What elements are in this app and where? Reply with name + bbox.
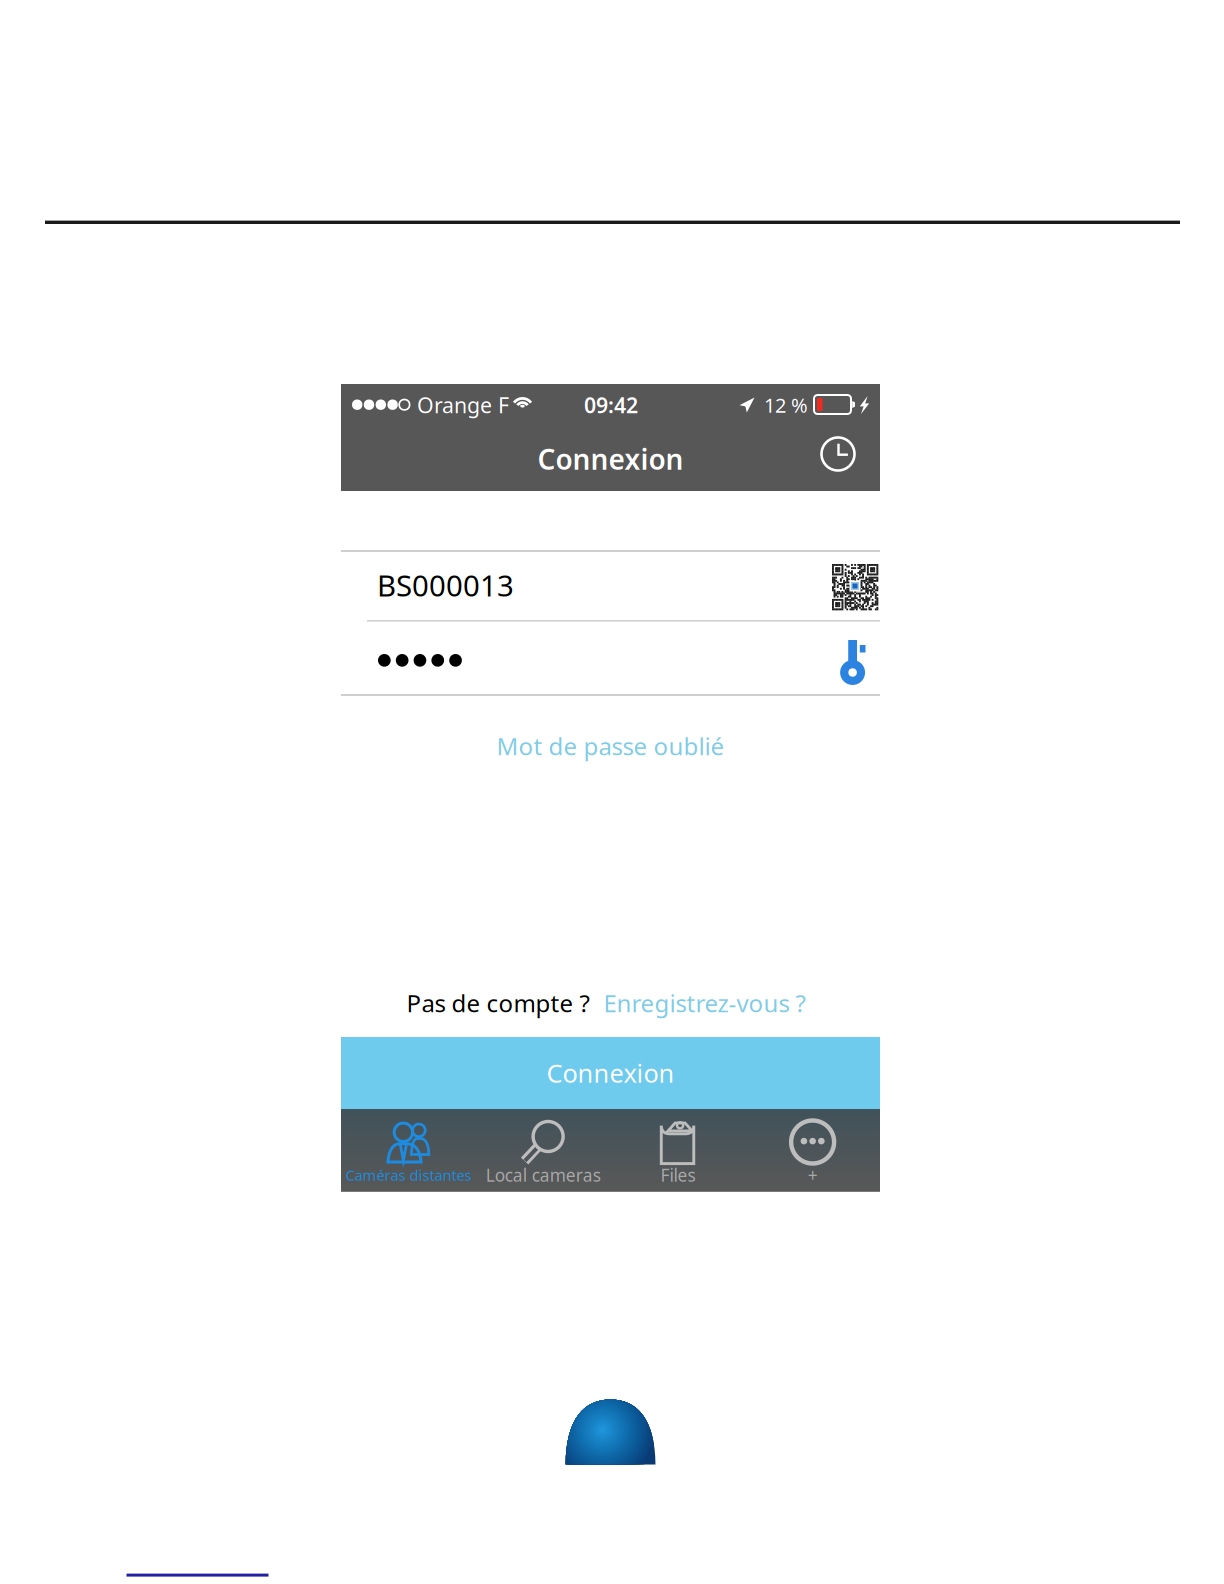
- staticText: Caméras distantes: [345, 1165, 471, 1185]
- button[interactable]: BS000013: [341, 550, 880, 620]
- button[interactable]: History: [810, 426, 866, 482]
- staticText: BS000013: [377, 565, 514, 604]
- staticText: Connexion: [537, 440, 683, 478]
- button[interactable]: Mot de passe oublié: [341, 724, 880, 768]
- staticText: +: [808, 1163, 818, 1186]
- staticText: 09:42: [584, 391, 638, 419]
- staticText: 12 %: [764, 392, 808, 418]
- staticText: Orange F: [417, 391, 509, 419]
- staticText: Local cameras: [486, 1163, 601, 1186]
- button[interactable]: Caméras distantes: [341, 1109, 476, 1191]
- button[interactable]: Local cameras: [476, 1109, 611, 1191]
- staticText: Pas de compte ?: [406, 987, 589, 1019]
- staticText: Files: [660, 1163, 695, 1186]
- button[interactable]: [341, 620, 880, 694]
- button[interactable]: Connexion: [341, 1037, 880, 1109]
- staticText: Connexion: [546, 1056, 674, 1090]
- button[interactable]: Files: [610, 1109, 745, 1191]
- staticText: Enregistrez-vous ?: [603, 987, 805, 1019]
- staticText: Mot de passe oublié: [496, 730, 724, 762]
- button[interactable]: Enregistrez-vous ?: [589, 982, 805, 1024]
- button[interactable]: +: [745, 1109, 880, 1191]
